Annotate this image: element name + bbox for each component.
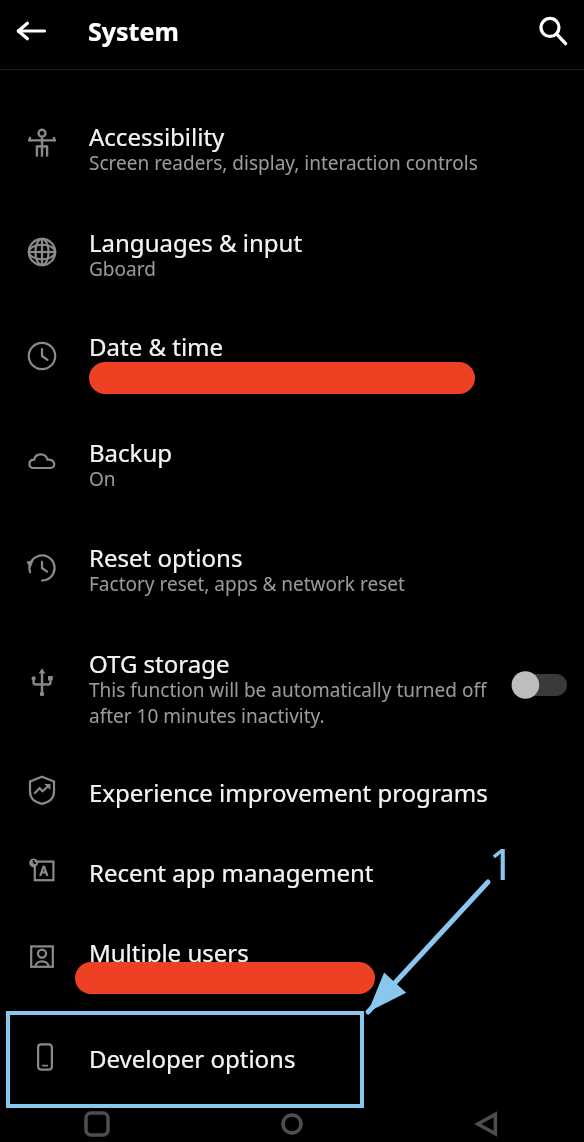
- staticText: Reset options: [89, 541, 243, 574]
- button[interactable]: OTG storage toggle: [511, 670, 567, 700]
- button[interactable]: [0, 318, 584, 418]
- staticText: Developer options: [89, 1042, 296, 1075]
- button[interactable]: Search: [522, 0, 584, 62]
- staticText: Languages & input: [89, 226, 303, 259]
- button[interactable]: Back: [389, 1105, 584, 1142]
- button[interactable]: [0, 212, 584, 312]
- button[interactable]: [0, 840, 584, 910]
- staticText: Multiple users: [89, 936, 249, 969]
- staticText: On: [89, 466, 116, 492]
- staticText: This function will be automatically turn…: [89, 677, 487, 703]
- staticText: Backup: [89, 436, 172, 469]
- button[interactable]: [0, 760, 584, 830]
- button[interactable]: [0, 108, 584, 208]
- staticText: Accessibility: [89, 120, 225, 153]
- staticText: OTG storage: [89, 647, 230, 680]
- staticText: Experience improvement programs: [89, 776, 488, 809]
- button[interactable]: Developer options: [8, 1013, 362, 1106]
- button[interactable]: Recents: [0, 1105, 194, 1142]
- staticText: Recent app management: [89, 856, 374, 889]
- button[interactable]: [0, 424, 584, 524]
- button[interactable]: [0, 529, 584, 629]
- staticText: after 10 minutes inactivity.: [89, 703, 325, 729]
- button[interactable]: Home: [194, 1105, 389, 1142]
- staticText: Gboard: [89, 256, 156, 282]
- button[interactable]: [0, 634, 584, 746]
- staticText: Date & time: [89, 330, 224, 363]
- staticText: Screen readers, display, interaction con…: [89, 150, 478, 176]
- staticText: System: [88, 14, 179, 48]
- button[interactable]: [0, 920, 584, 1020]
- staticText: Factory reset, apps & network reset: [89, 571, 405, 597]
- staticText: 1: [489, 833, 515, 893]
- button[interactable]: Back: [0, 0, 62, 62]
